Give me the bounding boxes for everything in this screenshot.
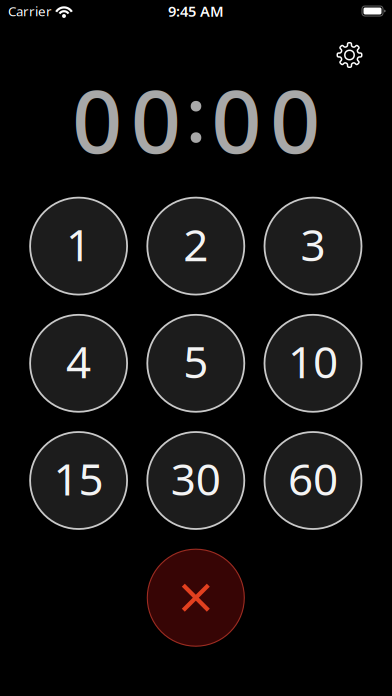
staticText: 5 bbox=[183, 332, 208, 390]
staticText: 0 bbox=[131, 61, 181, 177]
button[interactable]: 60 bbox=[264, 432, 361, 529]
button[interactable]: 4 bbox=[30, 315, 127, 412]
staticText: 0 bbox=[72, 61, 122, 177]
staticText: 30 bbox=[171, 449, 221, 508]
button[interactable]: 5 bbox=[147, 315, 244, 412]
button[interactable]: Reset timer bbox=[147, 549, 244, 646]
button[interactable]: 3 bbox=[264, 198, 361, 295]
button[interactable]: 2 bbox=[147, 198, 244, 295]
staticText: Carrier bbox=[8, 2, 52, 20]
button[interactable]: 30 bbox=[147, 432, 244, 529]
staticText: 9:45 AM bbox=[168, 1, 224, 21]
button[interactable]: 15 bbox=[30, 432, 127, 529]
staticText: 0 bbox=[211, 61, 261, 177]
staticText: 1 bbox=[66, 215, 91, 273]
button[interactable]: 1 bbox=[30, 198, 127, 295]
staticText: 3 bbox=[300, 215, 325, 273]
staticText: 15 bbox=[54, 449, 104, 508]
button[interactable]: 10 bbox=[264, 315, 361, 412]
staticText: 60 bbox=[288, 449, 338, 508]
staticText: 10 bbox=[288, 332, 338, 390]
staticText: 4 bbox=[66, 332, 91, 390]
staticText: 2 bbox=[183, 215, 208, 273]
staticText: 0 bbox=[270, 61, 320, 177]
button[interactable]: Settings bbox=[327, 32, 372, 77]
